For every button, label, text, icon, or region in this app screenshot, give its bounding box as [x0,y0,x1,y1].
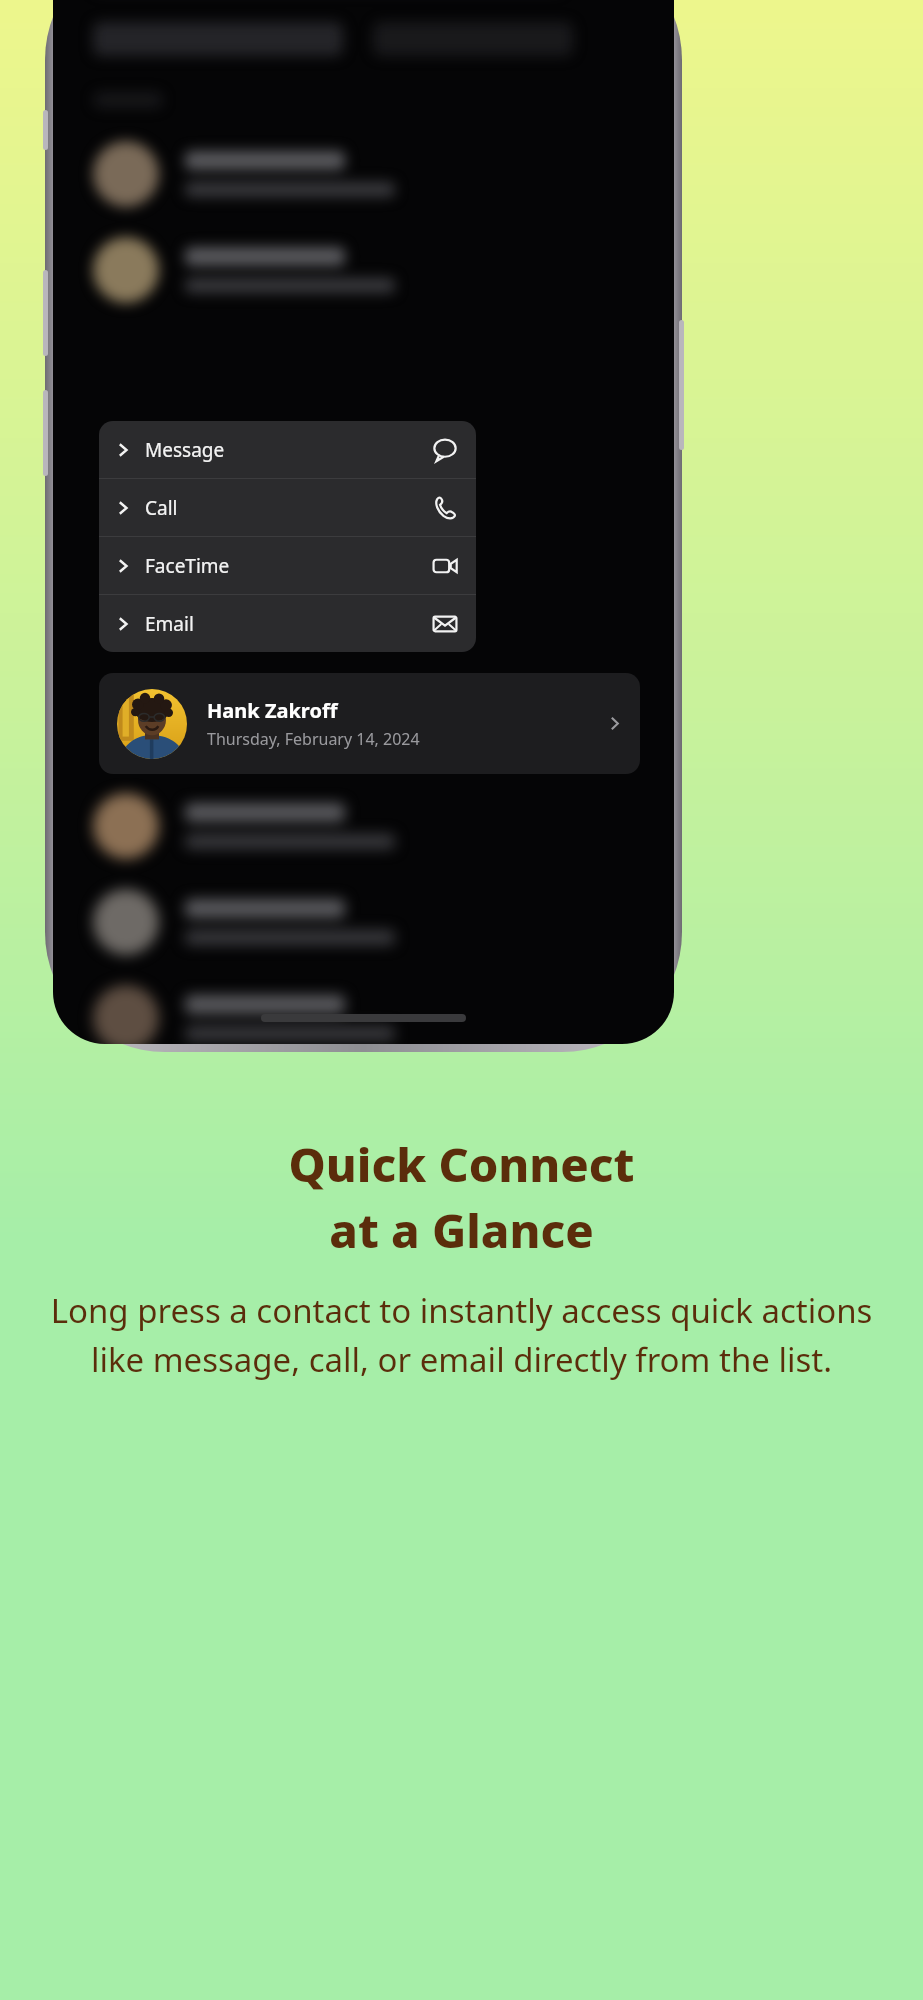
staticText: Call [145,495,178,521]
staticText: Long press a contact to instantly access… [28,1288,895,1381]
button[interactable]: FaceTime [99,537,476,594]
button[interactable]: Message [99,421,476,478]
button[interactable]: Call [99,479,476,536]
staticText: Message [145,437,225,463]
button[interactable]: Hank Zakroff [99,673,640,774]
staticText: Email [145,611,194,637]
staticText: FaceTime [145,553,230,579]
staticText: Quick Connect at a Glance [288,1132,635,1262]
staticText: Hank Zakroff [207,697,338,724]
staticText: Thursday, February 14, 2024 [207,728,420,750]
button[interactable]: Email [99,595,476,652]
